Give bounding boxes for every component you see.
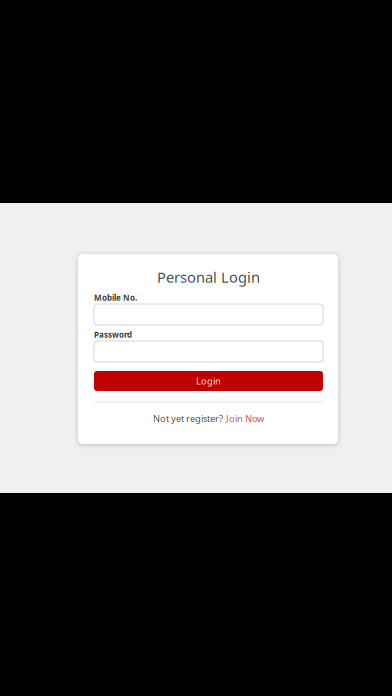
staticText: Join Now xyxy=(226,412,264,425)
staticText: Login xyxy=(196,375,221,387)
button[interactable]: Join Now xyxy=(226,412,264,425)
staticText: Personal Login xyxy=(157,267,260,287)
staticText: Not yet register? xyxy=(153,412,223,425)
button[interactable]: Mobile No. text field xyxy=(94,304,323,325)
staticText: Mobile No. xyxy=(94,292,137,303)
staticText: Password xyxy=(94,329,132,340)
button[interactable]: Login xyxy=(94,371,323,391)
button[interactable]: Password text field xyxy=(94,341,323,362)
